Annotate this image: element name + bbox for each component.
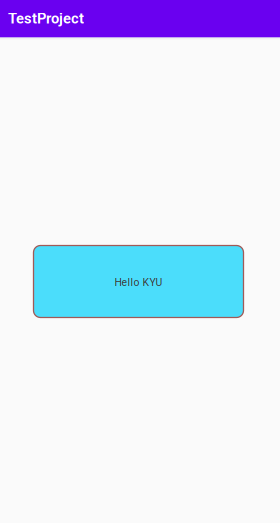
button[interactable]: Hello KYU	[33, 245, 243, 317]
staticText: TestProject	[8, 10, 84, 27]
staticText: Hello KYU	[114, 276, 162, 289]
